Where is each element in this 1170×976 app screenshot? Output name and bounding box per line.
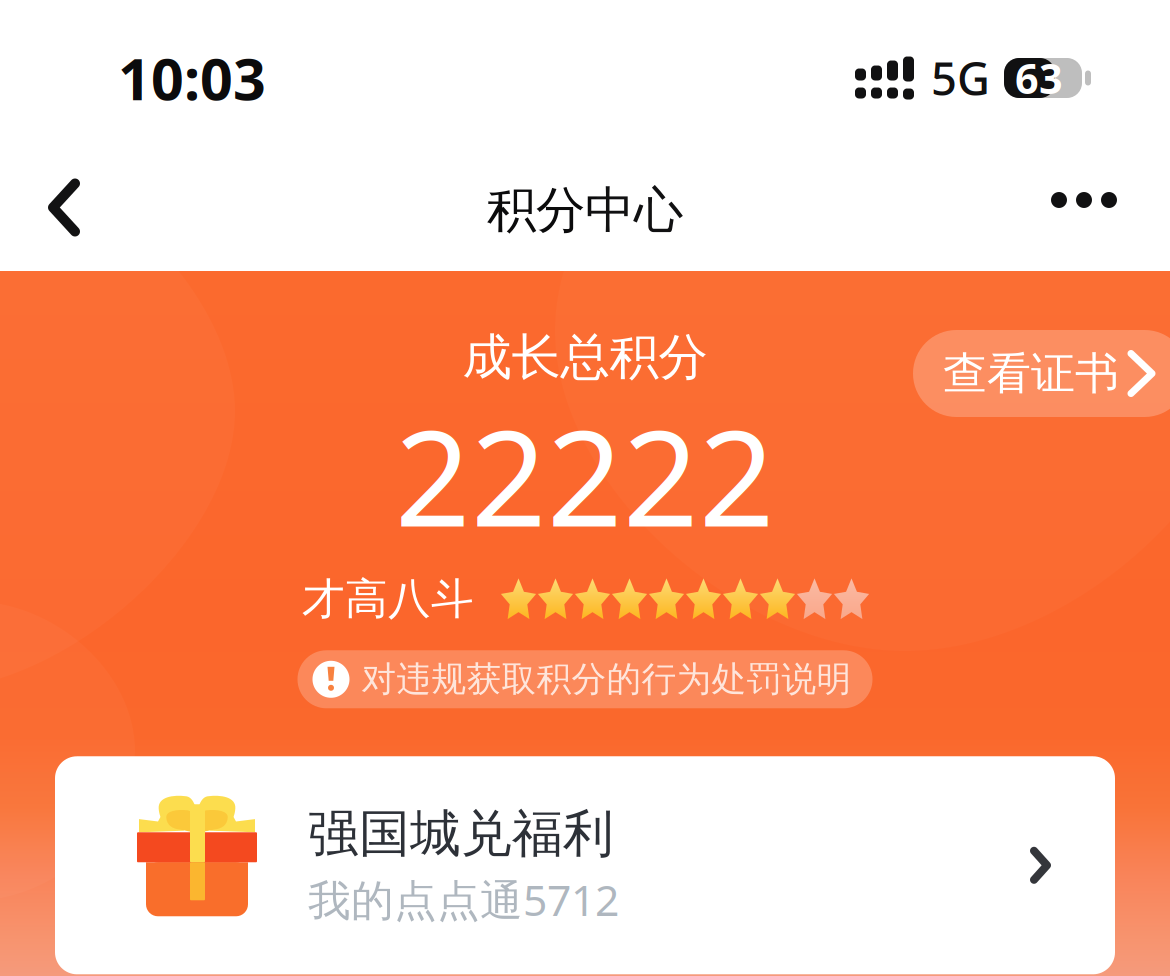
- staticText: 积分中心: [487, 180, 683, 241]
- staticText: 5G: [931, 48, 990, 108]
- staticText: 才高八斗: [302, 573, 474, 625]
- button[interactable]: More options: [991, 128, 1170, 271]
- staticText: 成长总积分: [462, 327, 707, 388]
- staticText: 查看证书: [943, 346, 1119, 400]
- button[interactable]: Back: [0, 131, 126, 267]
- button[interactable]: 对违规获取积分的行为处罚说明: [297, 650, 872, 708]
- staticText: 22222: [395, 388, 775, 563]
- staticText: 63: [1015, 51, 1063, 105]
- button[interactable]: 强国城兑福利: [55, 756, 1115, 974]
- button[interactable]: 查看证书: [913, 330, 1170, 417]
- staticText: 我的点点通5712: [308, 871, 619, 928]
- staticText: 强国城兑福利: [308, 803, 614, 865]
- staticText: 10:03: [118, 40, 266, 116]
- staticText: 对违规获取积分的行为处罚说明: [361, 658, 851, 701]
